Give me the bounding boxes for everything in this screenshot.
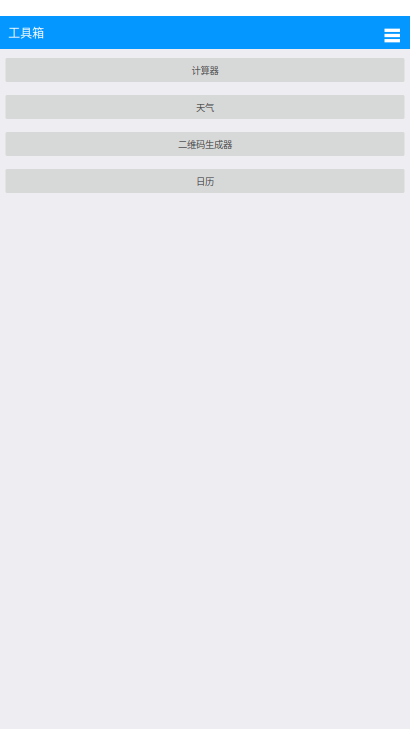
button[interactable]: 天气 — [5, 95, 404, 119]
staticText: 日历 — [196, 174, 214, 188]
button[interactable]: 日历 — [5, 169, 404, 193]
staticText: 天气 — [196, 100, 214, 114]
staticText: 工具箱 — [8, 24, 44, 41]
staticText: 计算器 — [191, 63, 218, 77]
staticText: 二维码生成器 — [178, 137, 232, 151]
button[interactable]: 二维码生成器 — [5, 132, 404, 156]
button[interactable]: Menu — [384, 23, 400, 42]
button[interactable]: 计算器 — [5, 58, 404, 82]
